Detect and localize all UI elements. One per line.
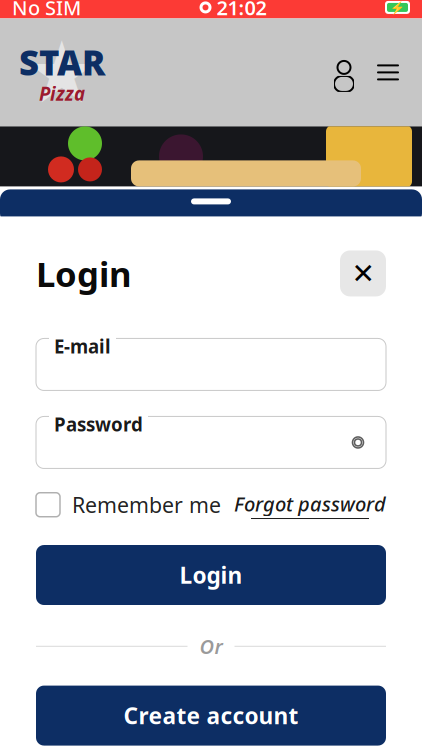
staticText: ★	[23, 24, 100, 121]
button[interactable]: Account	[322, 50, 366, 94]
button[interactable]: Forgot password	[234, 490, 386, 519]
button[interactable]: Create account	[36, 686, 386, 746]
staticText: Login	[179, 560, 242, 590]
staticText: Forgot password	[234, 490, 386, 517]
staticText: STAR	[19, 39, 105, 85]
staticText: ⚡	[390, 1, 405, 14]
staticText: Remember me	[72, 491, 221, 519]
button[interactable]: Login	[36, 545, 386, 605]
staticText: No SIM	[12, 0, 81, 21]
button[interactable]: Remember me	[36, 491, 221, 519]
staticText: ✕	[351, 258, 374, 289]
staticText: Password	[54, 412, 143, 437]
staticText: Pizza	[39, 81, 85, 106]
staticText: Login	[36, 250, 132, 296]
button[interactable]: Close	[340, 250, 386, 296]
button[interactable]: Show password	[338, 422, 378, 462]
staticText: Or	[199, 633, 222, 660]
button[interactable]: Menu	[366, 50, 410, 94]
staticText: 21:02	[216, 0, 266, 21]
staticText: E-mail	[54, 334, 111, 359]
staticText: Create account	[123, 700, 298, 731]
